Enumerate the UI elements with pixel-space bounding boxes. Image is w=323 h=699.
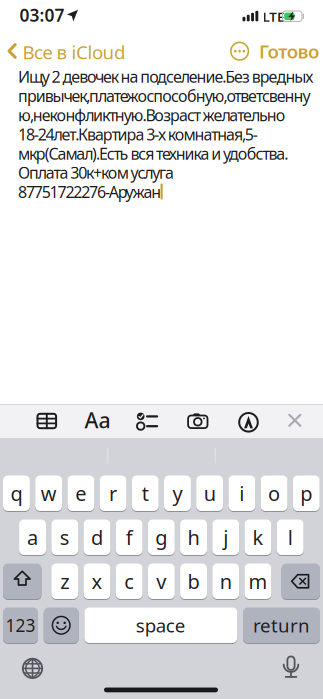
staticText: s [60, 524, 70, 551]
button[interactable]: f [116, 519, 143, 555]
staticText: h [187, 524, 199, 551]
button[interactable]: d [83, 519, 110, 555]
staticText: Оплата 30к+ком услуга [18, 162, 174, 183]
staticText: r [109, 480, 117, 507]
staticText: y [172, 480, 182, 507]
staticText: o [268, 480, 280, 507]
staticText: z [60, 568, 69, 595]
staticText: w [41, 480, 57, 507]
staticText: b [188, 568, 200, 595]
staticText: привычек,платежоспособную,ответсвенну [18, 85, 310, 106]
button[interactable]: o [261, 475, 287, 511]
button[interactable] [3, 563, 41, 599]
staticText: i [239, 480, 244, 507]
staticText: Aa [84, 406, 110, 434]
staticText: LTE [262, 8, 284, 25]
button[interactable] [32, 406, 62, 436]
button[interactable]: l [277, 519, 304, 555]
staticText: q [10, 480, 22, 507]
button[interactable]: g [148, 519, 175, 555]
button[interactable]: Aa [84, 406, 110, 434]
staticText: Ищу 2 девочек на подселение.Без вредных [18, 66, 313, 87]
staticText: j [223, 524, 228, 551]
button[interactable]: v [148, 563, 175, 599]
button[interactable] [280, 405, 310, 435]
staticText: p [300, 480, 312, 507]
button[interactable]: 123 [3, 607, 38, 643]
button[interactable]: e [67, 475, 94, 511]
staticText: c [124, 568, 134, 595]
button[interactable]: c [116, 563, 143, 599]
button[interactable]: space [84, 607, 237, 643]
button[interactable]: m [244, 563, 271, 599]
staticText: u [204, 480, 216, 507]
button[interactable]: Готово [259, 39, 319, 64]
button[interactable] [44, 607, 79, 643]
staticText: 123 [5, 614, 35, 637]
button[interactable]: p [293, 475, 320, 511]
staticText: m [248, 568, 267, 595]
staticText: 87751722276-Аружан [18, 181, 161, 202]
staticText: x [91, 568, 102, 595]
staticText: ю,неконфликтную.Возраст желательно [18, 104, 286, 126]
button[interactable]: q [3, 475, 30, 511]
staticText: l [288, 524, 293, 551]
button[interactable]: h [180, 519, 207, 555]
staticText: мкр(Самал).Есть вся техника и удобства. [18, 143, 288, 164]
button[interactable]: u [196, 475, 223, 511]
button[interactable] [19, 655, 45, 681]
button[interactable]: i [228, 475, 255, 511]
staticText: Все в iCloud [22, 40, 125, 64]
button[interactable]: z [51, 563, 78, 599]
button[interactable]: y [164, 475, 191, 511]
button[interactable]: x [83, 563, 110, 599]
staticText: space [136, 613, 186, 638]
button[interactable] [233, 407, 263, 437]
button[interactable] [281, 563, 320, 599]
button[interactable] [230, 41, 250, 61]
staticText: Готово [259, 39, 319, 64]
button[interactable]: w [35, 475, 62, 511]
staticText: f [126, 524, 133, 551]
button[interactable]: Все в iCloud [0, 0, 323, 699]
staticText: e [75, 480, 86, 507]
button[interactable]: j [212, 519, 239, 555]
staticText: a [27, 524, 38, 551]
button[interactable]: t [132, 475, 159, 511]
button[interactable]: a [19, 519, 46, 555]
button[interactable]: r [100, 475, 126, 511]
button[interactable] [183, 406, 213, 436]
staticText: 03:07 [19, 3, 64, 26]
staticText: v [156, 568, 166, 595]
staticText: n [220, 568, 232, 595]
staticText: return [253, 613, 310, 638]
button[interactable]: b [180, 563, 207, 599]
staticText: d [91, 524, 103, 551]
button[interactable]: s [51, 519, 78, 555]
staticText: g [155, 524, 167, 551]
staticText: k [252, 524, 263, 551]
button[interactable]: n [212, 563, 239, 599]
button[interactable]: k [244, 519, 271, 555]
button[interactable]: return [243, 607, 320, 643]
button[interactable] [278, 655, 304, 681]
staticText: t [142, 480, 149, 507]
staticText: 18-24лет.Квартира 3-х комнатная,5- [18, 124, 258, 145]
button[interactable] [132, 406, 162, 436]
